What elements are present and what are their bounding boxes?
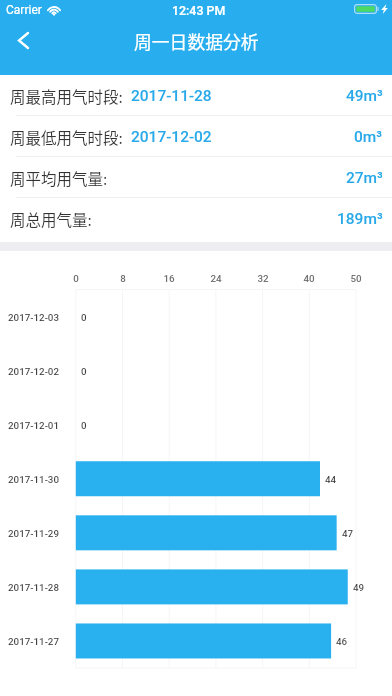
staticText: 40 (303, 273, 315, 284)
button[interactable]: 周总用气量: (0, 198, 392, 239)
staticText: 2017-12-01 (8, 420, 59, 431)
staticText: 2017-11-29 (8, 528, 59, 539)
staticText: 0 (81, 420, 87, 431)
staticText: 2017-11-28 (8, 582, 59, 593)
staticText: 2017-12-02 (131, 128, 212, 146)
staticText: 周平均用气量: (10, 167, 108, 189)
staticText: 16 (163, 273, 175, 284)
staticText: 2017-12-02 (8, 366, 59, 377)
staticText: 0m³ (354, 128, 383, 146)
staticText: 0 (73, 273, 79, 284)
staticText: 32 (257, 273, 269, 284)
button[interactable]: Back (0, 20, 46, 60)
button[interactable]: 周最高用气时段: (0, 75, 392, 116)
staticText: 周一日数据分析 (134, 28, 259, 54)
staticText: 189m³ (337, 210, 383, 228)
staticText: 周总用气量: (10, 208, 92, 230)
staticText: 12:43 PM (172, 3, 226, 18)
staticText: 24 (210, 273, 222, 284)
staticText: 27m³ (346, 169, 383, 187)
staticText: 47 (342, 528, 354, 539)
staticText: 2017-11-27 (8, 636, 59, 647)
staticText: 周最高用气时段: (10, 85, 123, 107)
staticText: 0 (81, 312, 87, 323)
staticText: 2017-11-28 (131, 87, 212, 105)
staticText: 2017-12-03 (8, 312, 59, 323)
staticText: Carrier (6, 3, 42, 17)
button[interactable]: 周最低用气时段: (0, 116, 392, 157)
staticText: 8 (120, 273, 126, 284)
staticText: 49m³ (346, 87, 383, 105)
staticText: 44 (325, 474, 337, 485)
button[interactable]: 周平均用气量: (0, 157, 392, 198)
staticText: 周最低用气时段: (10, 126, 123, 148)
staticText: 46 (336, 636, 348, 647)
staticText: 0 (81, 366, 87, 377)
staticText: 2017-11-30 (8, 474, 59, 485)
staticText: 50 (350, 273, 362, 284)
staticText: 49 (353, 582, 365, 593)
